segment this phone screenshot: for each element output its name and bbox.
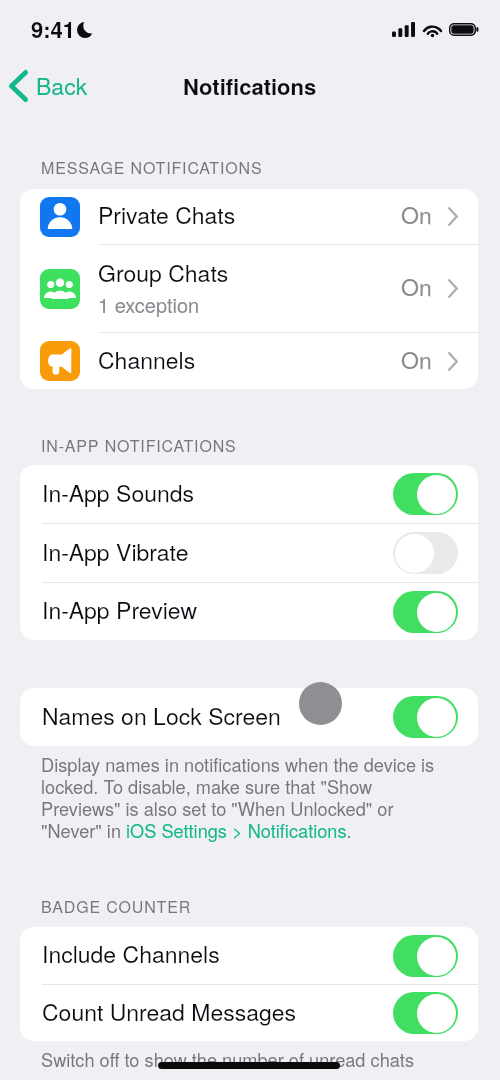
staticText: In-App Preview (42, 593, 393, 626)
button[interactable]: Toggle on (393, 992, 458, 1034)
button[interactable]: In-App Sounds (20, 465, 478, 523)
staticText: BADGE COUNTER (41, 895, 192, 918)
staticText: Notifications (183, 70, 317, 102)
staticText: On (401, 198, 432, 231)
staticText: Display names in notifications when the … (41, 755, 441, 843)
staticText: Back (36, 69, 88, 102)
button[interactable]: In-App Vibrate (20, 524, 478, 582)
button[interactable]: Toggle on (393, 473, 458, 515)
staticText: Group Chats (98, 256, 229, 289)
button[interactable]: Include Channels (20, 927, 478, 984)
button[interactable]: Names on Lock Screen (20, 688, 478, 746)
staticText: IN-APP NOTIFICATIONS (41, 434, 237, 457)
staticText: On (401, 270, 432, 303)
staticText: In-App Vibrate (42, 535, 393, 568)
staticText: Channels (98, 343, 196, 376)
button[interactable]: Private Chats (20, 189, 478, 244)
staticText: Include Channels (42, 937, 393, 970)
staticText: 1 exception (98, 290, 200, 319)
button[interactable]: Toggle off (393, 532, 458, 574)
staticText: Private Chats (98, 198, 236, 231)
button[interactable]: Group Chats (20, 245, 478, 332)
staticText: On (401, 343, 432, 376)
button[interactable]: In-App Preview (20, 583, 478, 640)
button[interactable]: Count Unread Messages (20, 985, 478, 1041)
staticText: MESSAGE NOTIFICATIONS (41, 156, 263, 179)
button[interactable]: Back (1, 67, 96, 104)
button[interactable]: Toggle on (393, 591, 458, 633)
staticText: Count Unread Messages (42, 995, 393, 1028)
staticText: Switch off to show the number of unread … (41, 1046, 415, 1072)
button[interactable]: Toggle on (393, 935, 458, 977)
staticText: Names on Lock Screen (42, 699, 393, 732)
staticText: In-App Sounds (42, 476, 393, 509)
button[interactable]: Channels (20, 333, 478, 389)
button[interactable]: Toggle on (393, 696, 458, 738)
staticText: 9:41 (31, 13, 76, 45)
